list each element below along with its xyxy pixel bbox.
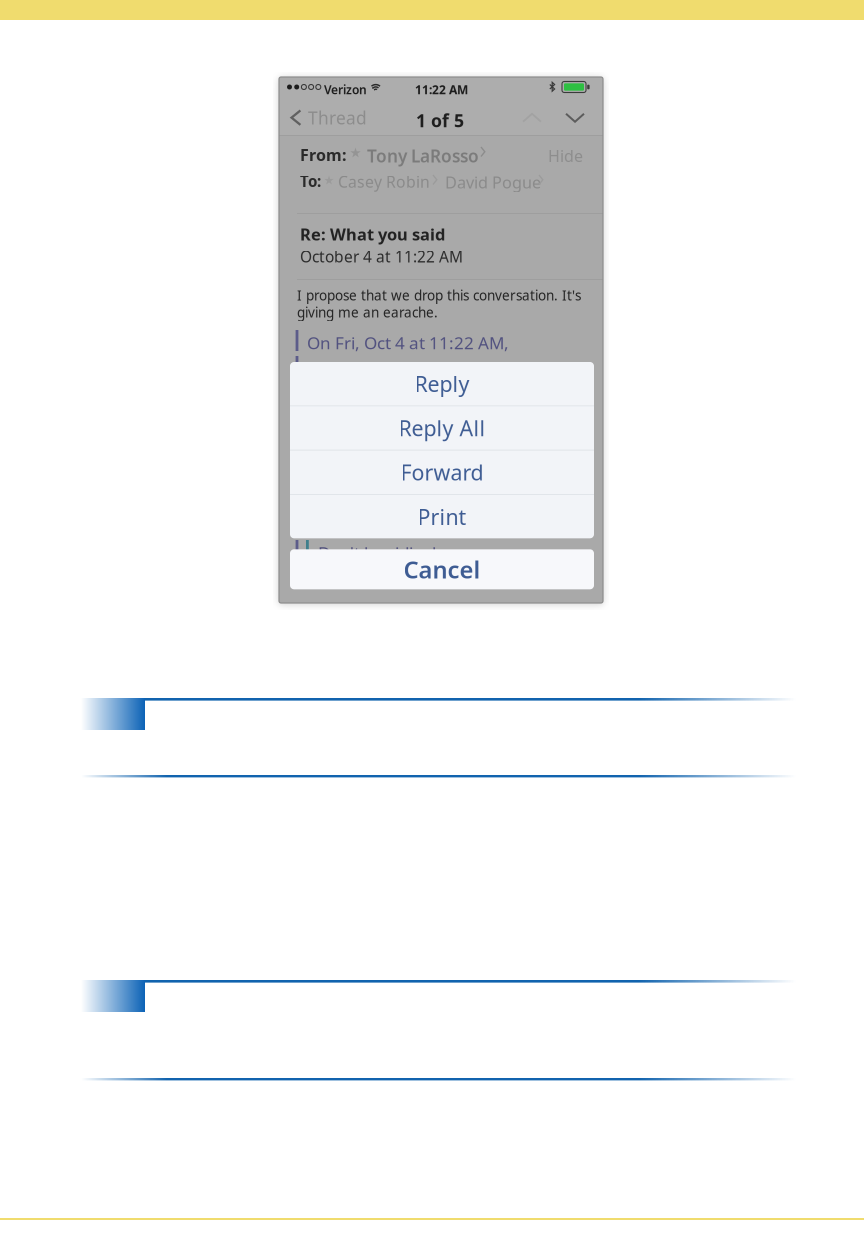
- button[interactable]: Print: [290, 495, 594, 538]
- staticText: Tony LaRosso: [367, 144, 479, 167]
- staticText: Don't be ridiculous: [318, 541, 465, 564]
- button[interactable]: Hide: [540, 139, 591, 173]
- staticText: Verizon: [324, 81, 367, 98]
- staticText: Re: What you said: [300, 223, 445, 245]
- staticText: David Pogue wrote:: [307, 357, 462, 380]
- staticText: Forward: [400, 458, 483, 487]
- staticText: From:: [300, 144, 346, 166]
- staticText: I propose that we drop this conversation…: [297, 286, 581, 304]
- button[interactable]: Cancel: [290, 549, 594, 589]
- button[interactable]: Reply: [290, 362, 594, 405]
- staticText: Reply All: [398, 413, 485, 443]
- button[interactable]: Next message: [555, 99, 595, 136]
- staticText: October 4 at 11:22 AM: [300, 246, 463, 267]
- staticText: Cancel: [403, 553, 480, 585]
- staticText: 1 of 5: [416, 108, 464, 132]
- staticText: 11:22 AM: [415, 81, 468, 98]
- staticText: Print: [417, 502, 466, 531]
- staticText: Hide: [548, 145, 583, 167]
- staticText: On Fri, Oct 4 at 11:22 AM,: [307, 331, 509, 354]
- staticText: giving me an earache.: [297, 303, 438, 321]
- staticText: Thread: [308, 106, 367, 129]
- button[interactable]: Forward: [290, 451, 594, 494]
- staticText: To:: [300, 171, 321, 191]
- staticText: David Pogue: [445, 171, 541, 193]
- staticText: Reply: [414, 369, 469, 398]
- button[interactable]: Reply All: [290, 406, 594, 450]
- button[interactable]: Thread: [279, 99, 377, 136]
- staticText: Casey Robin: [338, 171, 430, 192]
